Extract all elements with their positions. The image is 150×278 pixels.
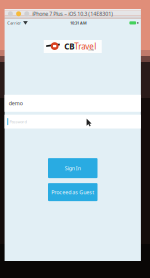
staticText: BETA <box>88 48 94 52</box>
staticText: 10:31 AM <box>70 20 87 25</box>
staticText: Carrier <box>7 20 21 25</box>
staticText: Sign In <box>65 165 81 172</box>
staticText: CB <box>64 41 74 52</box>
staticText: Proceed as Guest <box>51 189 94 196</box>
staticText: iPhone 7 Plus – iOS 10.3 (14E8301) <box>32 10 113 17</box>
button[interactable]: Sign In <box>48 158 97 178</box>
staticText: Travel <box>74 41 96 52</box>
staticText: Password <box>9 119 26 124</box>
button[interactable]: Proceed as Guest <box>48 183 97 201</box>
staticText: demo <box>9 100 23 107</box>
